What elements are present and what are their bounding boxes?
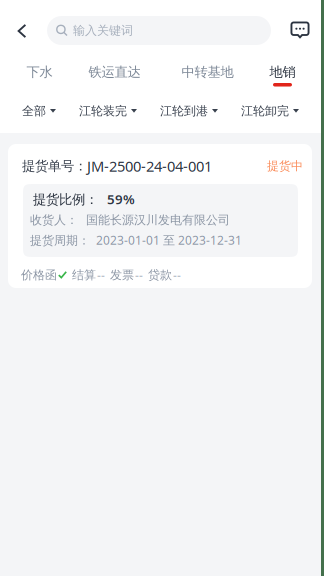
staticText: 全部 (22, 104, 46, 118)
button[interactable]: 地销 (236, 57, 297, 97)
staticText: 下水 (26, 64, 52, 80)
button[interactable]: Messages (286, 16, 314, 44)
staticText: 发票 (110, 268, 134, 282)
button[interactable]: 中转基地 (142, 57, 236, 97)
staticText: JM-2500-24-04-001 (87, 156, 212, 176)
button[interactable]: Back (8, 16, 36, 46)
button[interactable]: 全部 (22, 98, 56, 124)
button[interactable]: 江轮到港 (160, 98, 218, 124)
button[interactable]: 下水 (0, 57, 53, 97)
staticText: 地销 (269, 64, 295, 80)
staticText: 提货周期： 2023-01-01 至 2023-12-31 (30, 232, 242, 248)
staticText: 江轮装完 (79, 104, 127, 118)
staticText: 价格函 (21, 268, 57, 282)
staticText: 江轮到港 (160, 104, 208, 118)
button[interactable]: 江轮装完 (79, 98, 137, 124)
staticText: -- (173, 267, 181, 283)
staticText: 输入关键词 (73, 23, 133, 38)
staticText: 收货人： 国能长源汉川发电有限公司 (30, 213, 230, 227)
staticText: 铁运直达 (88, 64, 140, 80)
staticText: 中转基地 (181, 64, 233, 80)
staticText: 结算 (72, 268, 96, 282)
staticText: 提货比例： 59% (33, 190, 135, 208)
staticText: 江轮卸完 (241, 104, 289, 118)
button[interactable]: 提货单号： (8, 144, 312, 288)
button[interactable]: 江轮卸完 (241, 98, 299, 124)
staticText: 提货中 (267, 159, 303, 173)
staticText: -- (135, 267, 143, 283)
staticText: 贷款 (148, 268, 172, 282)
button[interactable]: 输入关键词 (47, 16, 271, 45)
button[interactable]: 铁运直达 (53, 57, 142, 97)
staticText: -- (97, 267, 105, 283)
staticText: 提货单号： (22, 158, 87, 174)
